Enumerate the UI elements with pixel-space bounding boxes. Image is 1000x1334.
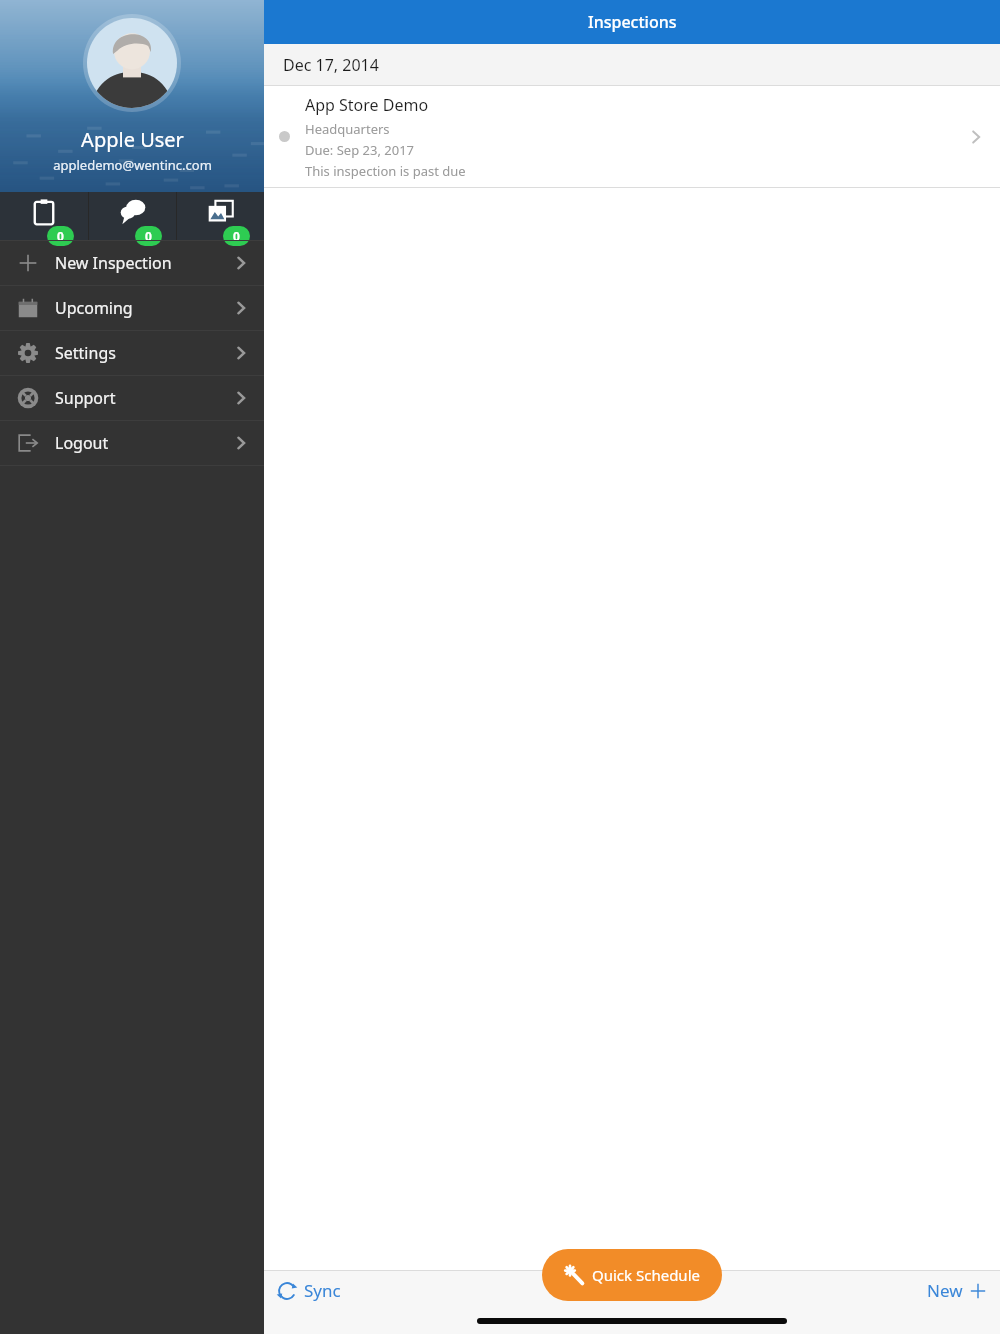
button[interactable]: Support (0, 376, 264, 420)
button[interactable]: Logout (0, 421, 264, 465)
staticText: 0 (145, 228, 152, 244)
staticText: Support (55, 387, 116, 409)
button[interactable]: Settings (0, 331, 264, 375)
staticText: Inspections (588, 11, 677, 33)
staticText: Dec 17, 2014 (283, 54, 379, 76)
staticText: Logout (55, 432, 109, 454)
staticText: 0 (233, 228, 240, 244)
button[interactable]: App Store Demo (264, 86, 1000, 187)
staticText: Apple User (81, 126, 184, 153)
staticText: Sync (304, 1279, 341, 1302)
staticText: 0 (57, 228, 64, 244)
button[interactable]: Sync (276, 1279, 341, 1302)
button[interactable]: New Inspection (0, 241, 264, 285)
staticText: Due: Sep 23, 2017 (305, 141, 415, 159)
button[interactable]: Upcoming (0, 286, 264, 330)
staticText: New Inspection (55, 252, 172, 274)
staticText: Settings (55, 342, 116, 364)
button[interactable]: Quick Schedule (542, 1249, 722, 1301)
staticText: Quick Schedule (592, 1265, 700, 1285)
staticText: Upcoming (55, 297, 133, 319)
staticText: This inspection is past due (305, 162, 466, 180)
staticText: New (927, 1279, 963, 1302)
button[interactable]: Inspections tab (0, 192, 88, 240)
staticText: Headquarters (305, 120, 390, 138)
button[interactable]: Messages tab (89, 192, 176, 240)
staticText: appledemo@wentinc.com (53, 156, 212, 174)
button[interactable]: Photos tab (177, 192, 264, 240)
staticText: App Store Demo (305, 94, 429, 116)
button[interactable]: New (927, 1279, 986, 1302)
